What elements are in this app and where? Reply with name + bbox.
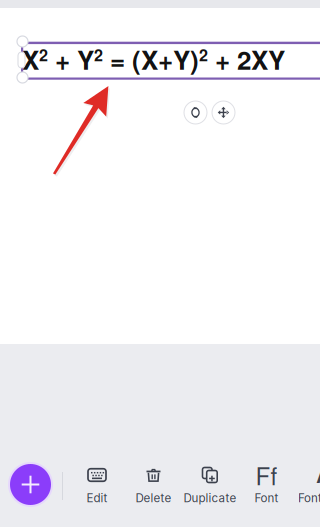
- staticText: Font Size: [298, 491, 320, 505]
- button[interactable]: Ff: [239, 467, 293, 515]
- button[interactable]: Edit: [70, 467, 124, 515]
- staticText: Font: [254, 491, 278, 505]
- staticText: Duplicate: [183, 491, 236, 505]
- staticText: Delete: [135, 491, 171, 505]
- staticText: Edit: [86, 491, 107, 505]
- button[interactable]: Move: [212, 101, 235, 124]
- staticText: X2 + Y2 = (X+Y)2 + 2XY: [22, 41, 285, 77]
- button[interactable]: Duplicate: [183, 467, 237, 515]
- button[interactable]: Add: [8, 462, 53, 507]
- staticText: Ff: [255, 458, 277, 492]
- staticText: A: [316, 461, 320, 489]
- button[interactable]: A: [296, 467, 320, 515]
- button[interactable]: Rotate: [184, 101, 207, 124]
- button[interactable]: Delete: [126, 467, 180, 515]
